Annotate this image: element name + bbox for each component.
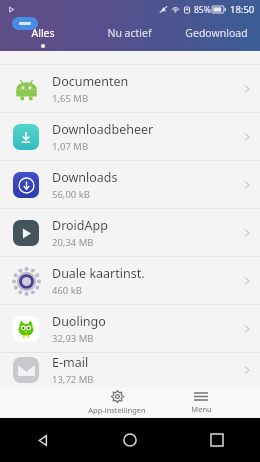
button[interactable]: Menu xyxy=(178,387,224,418)
button[interactable]: Documenten xyxy=(0,65,260,112)
button[interactable]: Downloadbeheer xyxy=(0,113,260,160)
button[interactable]: Duale kaartinst. xyxy=(0,257,260,304)
staticText: 56,00 kB xyxy=(52,188,91,201)
staticText: 85% xyxy=(194,4,211,16)
staticText: DroidApp xyxy=(52,217,108,234)
button[interactable]: DroidApp xyxy=(0,209,260,256)
button[interactable]: Alles xyxy=(0,18,86,51)
staticText: Downloads xyxy=(52,169,118,186)
button[interactable]: App settings xyxy=(74,387,160,418)
button[interactable]: Duolingo xyxy=(0,305,260,352)
button[interactable]: Nu actief xyxy=(86,18,173,51)
staticText: 18:50 xyxy=(230,3,255,16)
staticText: 1,65 MB xyxy=(52,92,89,105)
staticText: Nu actief xyxy=(107,26,152,40)
staticText: E-mail xyxy=(52,354,89,371)
staticText: 1,07 MB xyxy=(52,140,89,153)
staticText: Duolingo xyxy=(52,313,106,330)
staticText: Menu xyxy=(191,404,212,414)
staticText: Alles xyxy=(31,26,55,40)
button[interactable]: Home xyxy=(86,418,173,462)
button[interactable]: Gedownload xyxy=(173,18,260,51)
other: App settings xyxy=(111,390,124,403)
button[interactable]: Downloads xyxy=(0,161,260,208)
button[interactable]: Recents xyxy=(173,418,260,462)
staticText: Documenten xyxy=(52,73,129,90)
staticText: App-instellingen xyxy=(88,405,146,415)
staticText: 460 kB xyxy=(52,284,83,297)
staticText: Downloadbeheer xyxy=(52,121,154,138)
other: Menu xyxy=(194,391,208,402)
button[interactable]: Back xyxy=(0,418,86,462)
staticText: 20,34 MB xyxy=(52,236,94,249)
staticText: 13,72 MB xyxy=(52,373,94,386)
staticText: Gedownload xyxy=(185,26,248,40)
staticText: 32,93 MB xyxy=(52,332,94,345)
staticText: Duale kaartinst. xyxy=(52,265,145,282)
button[interactable]: E-mail xyxy=(0,353,260,387)
